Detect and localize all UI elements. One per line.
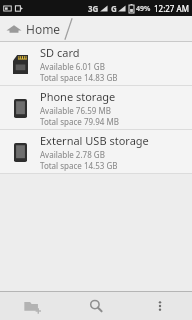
staticText: Total space 14.83 GB <box>40 72 118 83</box>
button[interactable]: External USB storage <box>0 130 192 173</box>
button[interactable]: Search <box>64 292 128 320</box>
staticText: Home <box>26 21 61 37</box>
staticText: 3G <box>88 3 99 14</box>
staticText: G <box>111 3 117 14</box>
staticText: SD card <box>40 45 80 60</box>
staticText: Phone storage <box>40 89 116 104</box>
staticText: Available 76.59 MB <box>40 105 111 116</box>
button[interactable]: New folder <box>0 292 64 320</box>
staticText: External USB storage <box>40 133 149 148</box>
staticText: 12:27 AM <box>154 3 189 14</box>
staticText: Available 2.78 GB <box>40 149 105 160</box>
staticText: Available 6.01 GB <box>40 61 105 72</box>
staticText: 49% <box>136 4 151 14</box>
staticText: Total space 14.53 GB <box>40 160 118 171</box>
button[interactable]: SD card <box>0 42 192 85</box>
button[interactable]: More options <box>128 292 192 320</box>
button[interactable]: Home <box>0 17 77 41</box>
button[interactable]: Phone storage <box>0 86 192 129</box>
staticText: Total space 79.94 MB <box>40 116 119 127</box>
